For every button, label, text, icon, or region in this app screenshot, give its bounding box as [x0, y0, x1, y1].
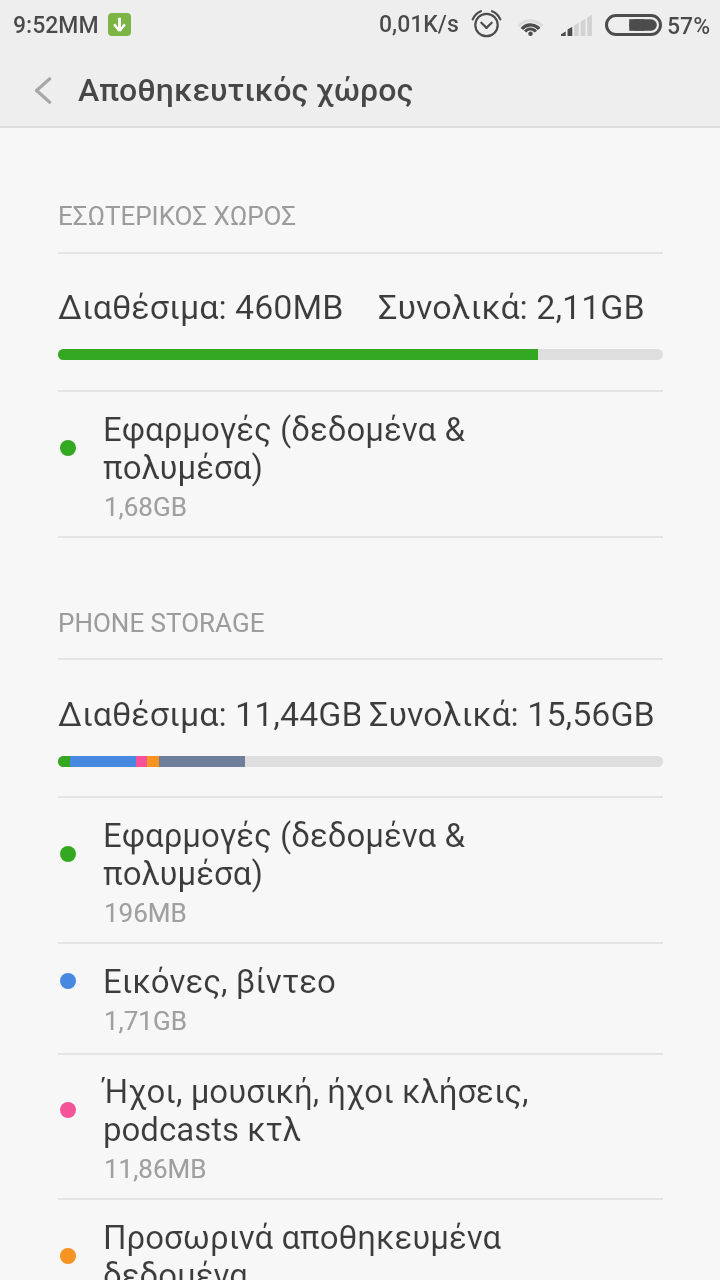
button: PHONE STORAGE [0, 608, 720, 654]
staticText: PHONE STORAGE [58, 608, 265, 638]
button[interactable] [0, 1054, 720, 1199]
staticText: Εικόνες, βίντεο [103, 962, 336, 1001]
staticText: 11,86MB [104, 1154, 207, 1184]
button[interactable]: Back [18, 65, 68, 115]
staticText: Προσωρινά αποθηκευμένα δεδομένα [103, 1218, 502, 1280]
button: ΕΣΩΤΕΡΙΚΟΣ ΧΩΡΟΣ [0, 201, 720, 247]
staticText: Αποθηκευτικός χώρος [78, 71, 414, 109]
staticText: Συνολικά: 2,11GB [378, 287, 645, 327]
button[interactable] [0, 797, 720, 943]
staticText: ΕΣΩΤΕΡΙΚΟΣ ΧΩΡΟΣ [58, 201, 297, 231]
staticText: 57% [667, 13, 711, 40]
staticText: 9:52MM [13, 12, 99, 39]
staticText: Συνολικά: 15,56GB [369, 694, 655, 734]
staticText: Διαθέσιμα: 11,44GB [58, 694, 360, 734]
staticText: 1,71GB [104, 1006, 187, 1036]
button[interactable]: Διαθέσιμα: 11,44GB [58, 694, 663, 734]
staticText: Ήχοι, μουσική, ήχοι κλήσεις, podcasts κτ… [103, 1072, 529, 1149]
staticText: Εφαρμογές (δεδομένα & πολυμέσα) [103, 816, 465, 893]
staticText: 0,01K/s [379, 11, 459, 38]
button[interactable]: Διαθέσιμα: 460MB [58, 287, 663, 327]
staticText: 196MB [104, 898, 187, 928]
button[interactable] [0, 1199, 720, 1280]
button[interactable] [0, 391, 720, 537]
staticText: Διαθέσιμα: 460MB [58, 287, 344, 327]
button[interactable] [0, 943, 720, 1054]
staticText: Εφαρμογές (δεδομένα & πολυμέσα) [103, 410, 465, 487]
staticText: 1,68GB [104, 492, 187, 522]
